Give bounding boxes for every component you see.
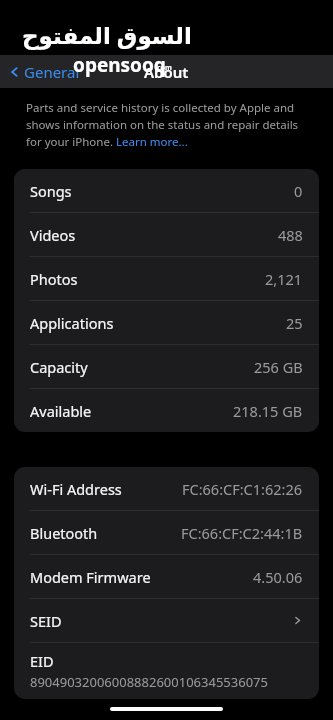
button[interactable]: Photos: [14, 257, 319, 301]
staticText: 218.15 GB: [233, 401, 303, 421]
staticText: EID: [30, 651, 54, 671]
button[interactable]: Available: [14, 389, 319, 432]
staticText: Capacity: [30, 357, 88, 377]
button[interactable]: Applications: [14, 301, 319, 345]
staticText: Photos: [30, 269, 78, 289]
staticText: 2,121: [265, 269, 303, 289]
staticText: Wi-Fi Address: [30, 479, 122, 499]
staticText: Applications: [30, 313, 114, 333]
button[interactable]: Back: [8, 62, 80, 82]
staticText: 4.50.06: [253, 567, 303, 587]
button[interactable]: Bluetooth: [14, 511, 319, 555]
staticText: 256 GB: [254, 357, 303, 377]
staticText: Songs: [30, 181, 72, 201]
button[interactable]: SEID: [14, 599, 319, 643]
button[interactable]: Capacity: [14, 345, 319, 389]
staticText: FC:66:CF:C1:62:26: [182, 479, 303, 499]
button[interactable]: Videos: [14, 213, 319, 257]
staticText: Parts and service history is collected b…: [26, 100, 307, 150]
button[interactable]: Wi-Fi Address: [14, 467, 319, 511]
staticText: Bluetooth: [30, 523, 98, 543]
staticText: SEID: [30, 611, 62, 631]
staticText: Videos: [30, 225, 76, 245]
staticText: opensooq: [73, 52, 166, 78]
button[interactable]: Songs: [14, 169, 319, 213]
button[interactable]: EID: [14, 643, 319, 699]
staticText: 89049032006008882600106345536075: [30, 673, 268, 691]
staticText: General: [24, 62, 80, 82]
staticText: About: [144, 62, 189, 82]
other: Back: [8, 65, 22, 79]
staticText: 0: [294, 181, 303, 201]
staticText: FC:66:CF:C2:44:1B: [181, 523, 303, 543]
staticText: 25: [286, 313, 303, 333]
other: SEID details: [292, 615, 303, 626]
button[interactable]: Modem Firmware: [14, 555, 319, 599]
staticText: السوق المفتوح: [22, 19, 192, 50]
staticText: 488: [278, 225, 303, 245]
staticText: Available: [30, 401, 92, 421]
staticText: Modem Firmware: [30, 567, 151, 587]
staticText: .com: [155, 63, 172, 73]
